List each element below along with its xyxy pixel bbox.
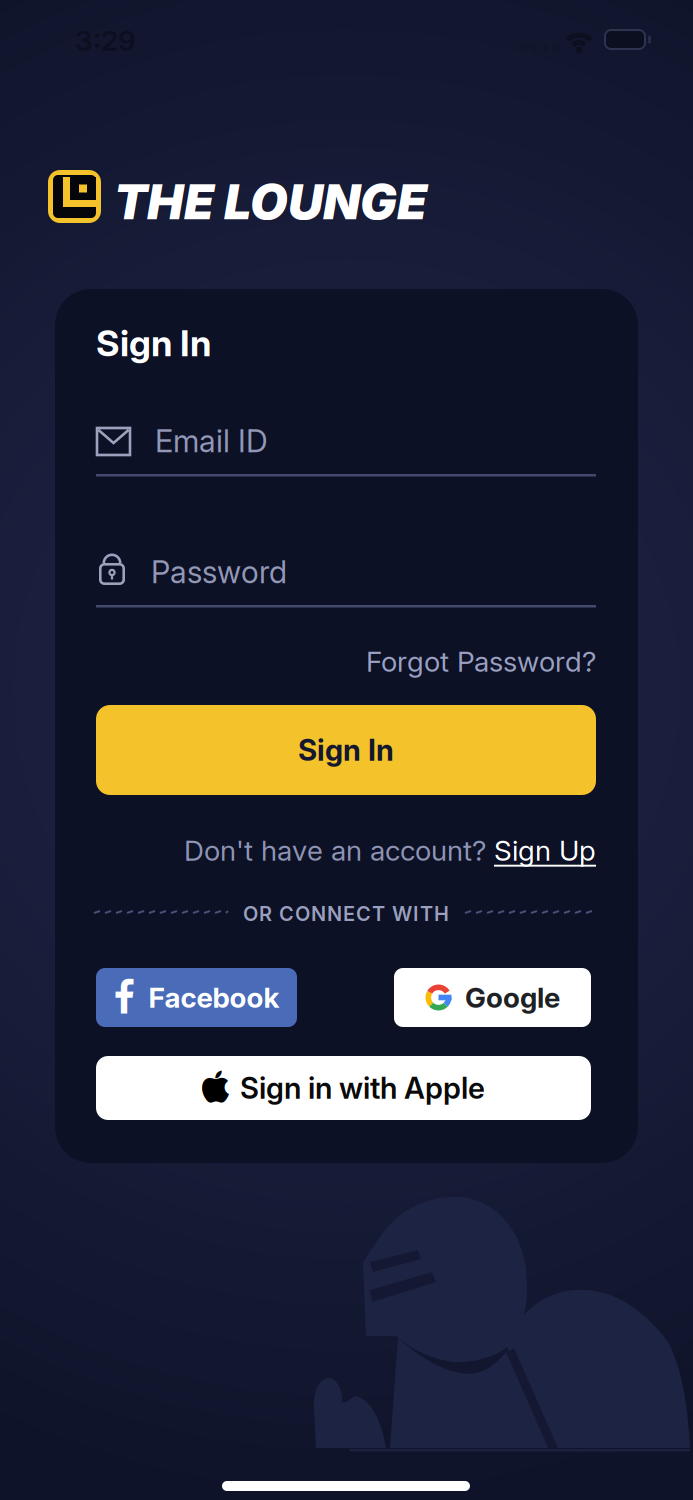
button[interactable]: Sign In <box>96 705 596 795</box>
staticText: Sign In <box>298 733 394 767</box>
button[interactable]:  <box>96 1056 591 1120</box>
button[interactable]: Google <box>394 968 591 1027</box>
staticText: Sign in with Apple <box>240 1071 485 1105</box>
staticText: Sign In <box>96 322 211 364</box>
staticText: Email ID <box>155 423 268 459</box>
button[interactable]: Sign Up <box>494 834 596 867</box>
staticText: Sign Up <box>494 834 596 867</box>
staticText:  <box>202 1071 229 1105</box>
staticText: OR CONNECT WITH <box>243 902 449 926</box>
staticText: THE LOUNGE <box>114 172 427 231</box>
staticText: Don't have an account? <box>184 834 486 867</box>
staticText:  <box>113 979 134 1016</box>
button[interactable]: Email ID <box>96 424 596 477</box>
staticText: Password <box>151 554 287 590</box>
staticText: 3:29 <box>75 24 136 57</box>
staticText: Facebook <box>148 981 279 1014</box>
button[interactable]: Password <box>96 550 596 608</box>
staticText: Google <box>465 981 560 1014</box>
button[interactable]:  <box>96 968 297 1027</box>
button[interactable]: Forgot Password? <box>366 645 596 678</box>
staticText: Forgot Password? <box>366 645 596 678</box>
